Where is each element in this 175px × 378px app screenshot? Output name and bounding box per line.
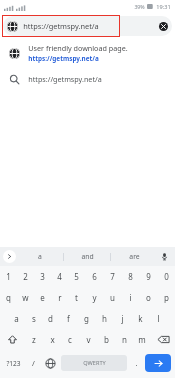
button[interactable]: e — [34, 287, 51, 308]
staticText: s — [32, 313, 36, 324]
button[interactable]: and — [64, 247, 110, 266]
button[interactable]: f — [59, 308, 77, 329]
button[interactable]: 5 — [68, 266, 85, 287]
staticText: 3 — [40, 271, 45, 282]
button[interactable]: . — [129, 350, 143, 376]
staticText: p — [164, 292, 169, 303]
button[interactable]: ?123 — [2, 350, 25, 376]
button[interactable]: q — [0, 287, 17, 308]
button[interactable]: / — [25, 350, 41, 376]
button[interactable]: w — [17, 287, 34, 308]
button[interactable]: 3 — [34, 266, 51, 287]
button[interactable]: User friendly download page. — [0, 39, 175, 67]
button[interactable]: a — [16, 247, 63, 266]
staticText: f — [67, 313, 70, 324]
button[interactable]: 1 — [0, 266, 17, 287]
button[interactable]: x — [43, 329, 61, 350]
button[interactable]: 6 — [85, 266, 103, 287]
button[interactable]: g — [77, 308, 95, 329]
button[interactable]: 9 — [139, 266, 157, 287]
button[interactable]: https://getmspy.net/a — [3, 16, 172, 36]
staticText: x — [50, 334, 55, 345]
staticText: and — [81, 252, 94, 261]
staticText: t — [75, 292, 78, 303]
staticText: 8 — [128, 271, 133, 282]
staticText: z — [32, 334, 36, 345]
button[interactable]: k — [131, 308, 149, 329]
button[interactable]: QWERTY — [61, 355, 127, 371]
button[interactable]: d — [42, 308, 59, 329]
staticText: are — [129, 252, 140, 261]
button[interactable]: Clear — [154, 17, 172, 35]
button[interactable]: h — [95, 308, 113, 329]
staticText: ?123 — [6, 359, 21, 368]
staticText: h — [102, 313, 107, 324]
button[interactable]: v — [79, 329, 97, 350]
staticText: QWERTY — [83, 359, 106, 367]
staticText: w — [22, 292, 29, 303]
staticText: k — [138, 313, 143, 324]
button[interactable]: Shift — [0, 329, 25, 350]
button[interactable]: Backspace — [151, 329, 175, 350]
button[interactable]: j — [113, 308, 131, 329]
staticText: q — [6, 292, 11, 303]
staticText: b — [104, 334, 109, 345]
button[interactable]: Expand suggestions — [3, 250, 16, 263]
button[interactable]: are — [111, 247, 157, 266]
staticText: a — [14, 313, 19, 324]
staticText: https://getmspy.net/a — [28, 54, 99, 63]
staticText: https://getmspy.net/a — [28, 74, 102, 84]
staticText: r — [58, 292, 62, 303]
staticText: l — [157, 313, 160, 324]
button[interactable]: i — [121, 287, 139, 308]
button[interactable]: z — [25, 329, 43, 350]
button[interactable]: Change language — [41, 350, 59, 376]
button[interactable]: m — [133, 329, 151, 350]
button[interactable]: y — [85, 287, 103, 308]
staticText: e — [40, 292, 45, 303]
staticText: 6 — [92, 271, 97, 282]
staticText: c — [68, 334, 72, 345]
button[interactable]: Go — [145, 354, 171, 372]
staticText: j — [121, 313, 124, 324]
button[interactable]: s — [25, 308, 42, 329]
staticText: 1 — [6, 271, 11, 282]
button[interactable]: 0 — [157, 266, 175, 287]
button[interactable]: 4 — [51, 266, 68, 287]
staticText: 7 — [110, 271, 115, 282]
staticText: . — [135, 358, 138, 368]
staticText: 2 — [23, 271, 28, 282]
staticText: https://getmspy.net/a — [23, 21, 99, 31]
button[interactable]: r — [51, 287, 68, 308]
staticText: u — [110, 292, 115, 303]
button[interactable]: t — [68, 287, 85, 308]
staticText: 4 — [57, 271, 62, 282]
button[interactable]: a — [8, 308, 25, 329]
staticText: y — [92, 292, 97, 303]
button[interactable]: Voice input — [157, 249, 172, 264]
button[interactable]: l — [149, 308, 167, 329]
staticText: 5 — [74, 271, 79, 282]
button[interactable]: https://getmspy.net/a — [0, 67, 175, 91]
staticText: g — [84, 313, 89, 324]
button[interactable]: 8 — [121, 266, 139, 287]
button[interactable]: n — [115, 329, 133, 350]
staticText: n — [122, 334, 127, 345]
button[interactable]: p — [157, 287, 175, 308]
button[interactable]: 7 — [103, 266, 121, 287]
button[interactable]: b — [97, 329, 115, 350]
staticText: 9 — [146, 271, 151, 282]
staticText: v — [86, 334, 91, 345]
button[interactable]: o — [139, 287, 157, 308]
staticText: d — [48, 313, 53, 324]
button[interactable]: u — [103, 287, 121, 308]
staticText: o — [146, 292, 151, 303]
staticText: m — [138, 334, 146, 345]
staticText: 0 — [164, 271, 169, 282]
staticText: 39% — [134, 3, 145, 10]
button[interactable]: 2 — [17, 266, 34, 287]
staticText: User friendly download page. — [28, 43, 128, 53]
button[interactable]: c — [61, 329, 79, 350]
staticText: 19:31 — [156, 3, 171, 11]
staticText: a — [38, 252, 42, 261]
